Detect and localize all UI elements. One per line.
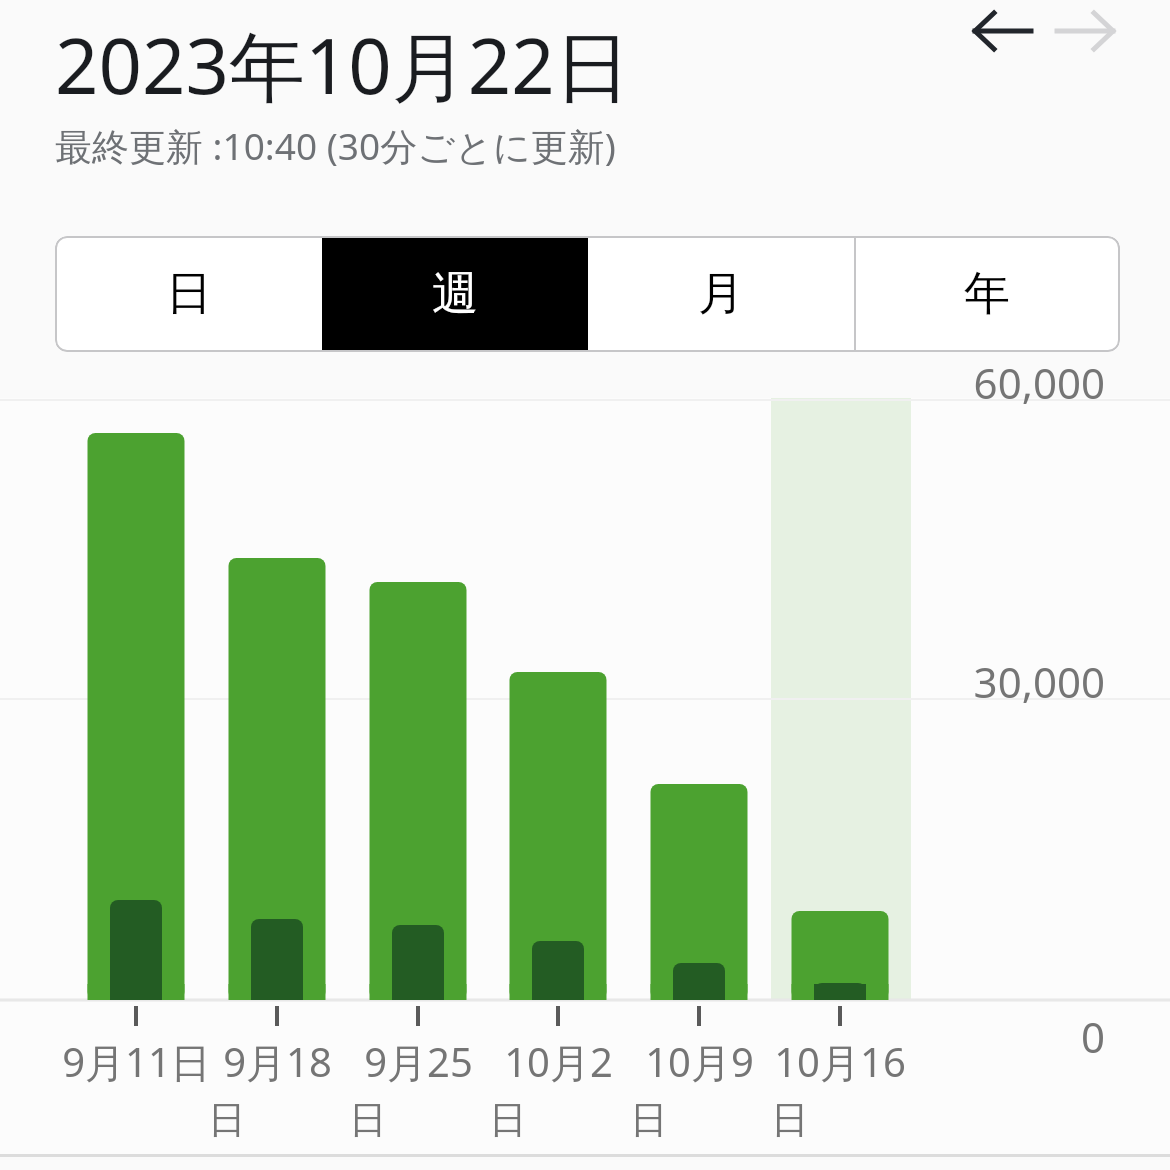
staticText: 9月18 xyxy=(223,1034,332,1089)
button[interactable]: Next period xyxy=(1047,0,1125,62)
staticText: 年 xyxy=(964,265,1010,323)
button[interactable]: 週 xyxy=(322,236,588,352)
button[interactable]: 日 xyxy=(55,236,322,352)
staticText: 0 xyxy=(1080,1008,1105,1060)
button[interactable]: 月 xyxy=(588,236,854,352)
staticText: 10月2 xyxy=(504,1034,613,1089)
staticText: 10月16 xyxy=(774,1034,906,1089)
staticText: 月 xyxy=(698,265,744,323)
staticText: 日 xyxy=(349,1096,387,1144)
button[interactable]: 60,000 xyxy=(0,398,1170,1154)
button[interactable]: 年 xyxy=(854,236,1120,352)
staticText: 9月25 xyxy=(364,1034,473,1089)
staticText: 30,000 xyxy=(973,653,1105,705)
staticText: 日 xyxy=(771,1096,809,1144)
staticText: 週 xyxy=(432,265,478,323)
staticText: 日 xyxy=(489,1096,527,1144)
staticText: 日 xyxy=(166,265,212,323)
staticText: 最終更新 :10:40 (30分ごとに更新) xyxy=(55,120,616,171)
staticText: 9月11日 xyxy=(62,1034,211,1089)
staticText: 日 xyxy=(208,1096,246,1144)
staticText: 60,000 xyxy=(973,354,1105,406)
button[interactable]: Previous period xyxy=(963,0,1041,62)
staticText: 2023年10月22日 xyxy=(55,13,631,117)
staticText: 日 xyxy=(630,1096,668,1144)
staticText: 10月9 xyxy=(645,1034,754,1089)
